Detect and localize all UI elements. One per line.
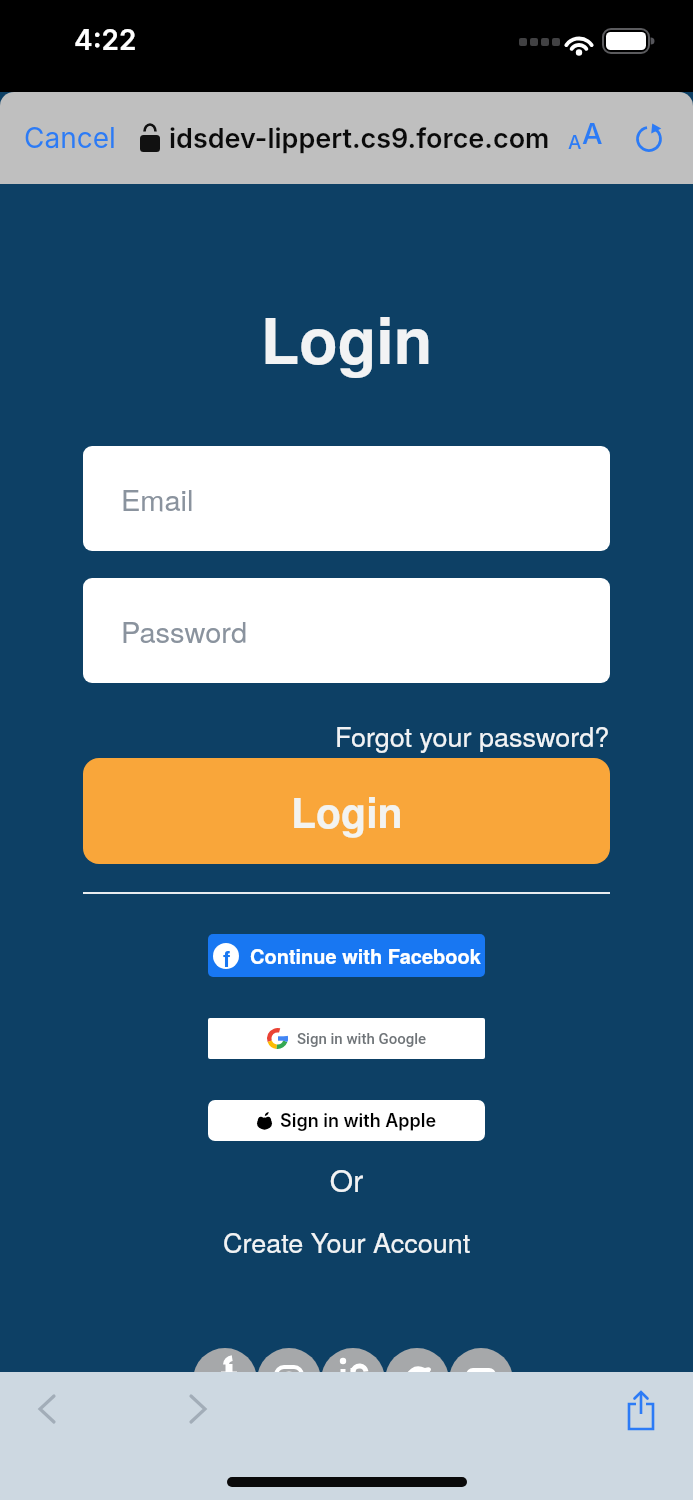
staticText: f: [223, 943, 231, 968]
button[interactable]: idsdev-lippert.cs9.force.com: [169, 122, 550, 155]
button[interactable]: Cancel: [12, 110, 122, 166]
staticText: Sign in with Apple: [280, 1110, 437, 1132]
button[interactable]: Login: [83, 758, 610, 864]
staticText: Forgot your password?: [335, 716, 610, 755]
staticText: Login: [0, 293, 693, 383]
button[interactable]: Sign in with Apple: [208, 1100, 485, 1141]
button[interactable]: Create Your Account: [0, 1222, 693, 1261]
staticText: Create Your Account: [223, 1222, 471, 1261]
staticText: Continue with Facebook: [250, 941, 481, 970]
staticText: A: [582, 116, 603, 151]
button[interactable]: Password: [83, 578, 610, 683]
button[interactable]: [625, 1390, 659, 1432]
button[interactable]: f: [208, 934, 485, 977]
staticText: Sign in with Google: [297, 1030, 427, 1048]
staticText: Or: [0, 1158, 693, 1201]
button[interactable]: Forgot your password?: [83, 716, 610, 755]
button[interactable]: [634, 123, 666, 155]
staticText: Password: [121, 610, 248, 652]
staticText: A: [568, 131, 582, 154]
button[interactable]: A: [564, 112, 612, 164]
button[interactable]: [184, 1394, 212, 1424]
button[interactable]: [33, 1394, 61, 1424]
button[interactable]: Email: [83, 446, 610, 551]
staticText: 4:22: [74, 23, 137, 57]
button[interactable]: Sign in with Google: [208, 1018, 485, 1059]
staticText: Email: [121, 478, 194, 520]
staticText: Cancel: [24, 121, 116, 155]
button[interactable]: [193, 1348, 513, 1412]
staticText: Login: [291, 782, 403, 841]
